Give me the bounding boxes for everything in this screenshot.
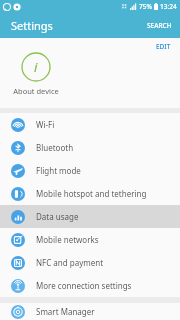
other: Mobile hotspot and tethering — [11, 187, 25, 201]
button[interactable]: SEARCH — [139, 16, 180, 35]
staticText: EDIT — [156, 42, 171, 51]
button[interactable]: Mobile networks — [0, 228, 180, 251]
staticText: Smart Manager — [36, 306, 95, 317]
button[interactable]: EDIT — [147, 38, 180, 55]
button[interactable]: Smart Manager — [0, 303, 180, 320]
other: Wi-Fi — [11, 118, 25, 132]
staticText: Bluetooth — [36, 142, 74, 153]
button[interactable]: Wi-Fi — [0, 113, 180, 136]
button[interactable]: Data usage — [0, 205, 180, 228]
staticText: Mobile networks — [36, 234, 99, 245]
other: Flight mode — [11, 164, 25, 178]
staticText: Data usage — [36, 211, 79, 222]
staticText: Flight mode — [36, 165, 81, 176]
staticText: 13:24 — [160, 2, 177, 11]
staticText: Wi-Fi — [36, 119, 55, 130]
staticText: More connection settings — [36, 280, 132, 291]
other: Smart Manager — [11, 305, 25, 319]
button[interactable]: NFC and payment — [0, 251, 180, 274]
staticText: NFC and payment — [36, 257, 104, 268]
button[interactable]: More connection settings — [0, 274, 180, 297]
button[interactable]: Mobile hotspot and tethering — [0, 182, 180, 205]
staticText: About device — [13, 86, 59, 96]
other: Bluetooth — [11, 141, 25, 155]
other: NFC and payment — [11, 256, 25, 270]
button[interactable]: Flight mode — [0, 159, 180, 182]
other: Mobile networks — [11, 233, 25, 247]
other: Data usage — [11, 210, 25, 224]
staticText: 75% — [139, 2, 152, 11]
staticText: SEARCH — [147, 21, 172, 30]
button[interactable]: i — [13, 52, 59, 96]
button[interactable]: Bluetooth — [0, 136, 180, 159]
staticText: i — [34, 58, 38, 76]
other: More connection settings — [11, 279, 25, 293]
staticText: Settings — [11, 18, 53, 33]
staticText: Mobile hotspot and tethering — [36, 188, 147, 199]
